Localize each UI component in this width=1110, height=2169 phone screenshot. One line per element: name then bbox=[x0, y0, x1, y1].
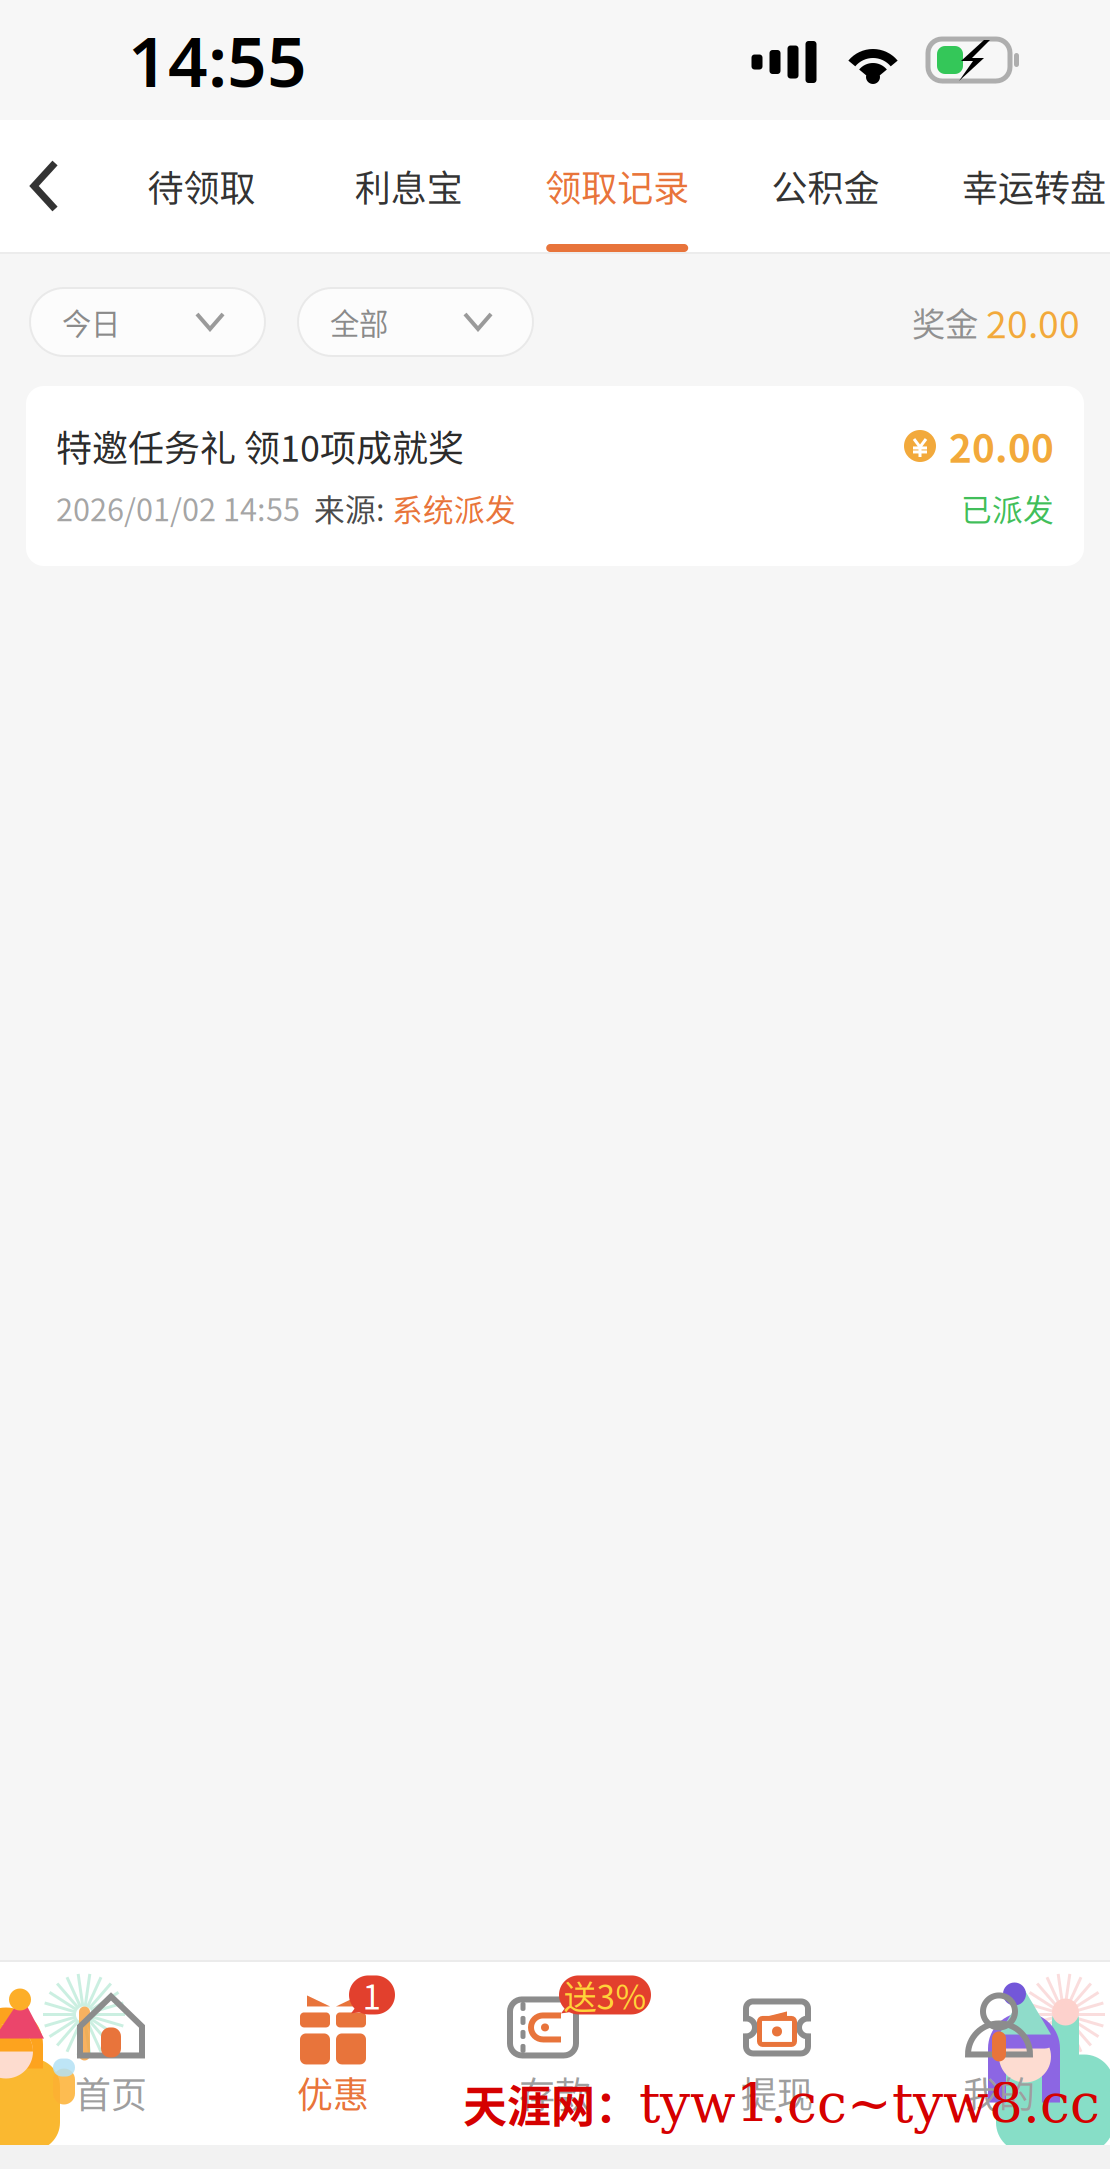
button[interactable]: 幸运转盘 bbox=[962, 120, 1106, 252]
staticText: 优惠 bbox=[297, 2066, 369, 2118]
staticText: 提现 bbox=[741, 2066, 813, 2118]
staticText: 全部 bbox=[330, 301, 388, 343]
staticText: 来源: bbox=[300, 486, 392, 530]
button[interactable]: 我的 bbox=[888, 1966, 1110, 2140]
staticText: 天涯网： bbox=[463, 2072, 639, 2135]
staticText: 幸运转盘 bbox=[962, 160, 1106, 212]
staticText: 领取记录 bbox=[545, 160, 689, 212]
button[interactable]: 送3% bbox=[444, 1966, 666, 2140]
staticText: 20.00 bbox=[978, 295, 1080, 349]
button[interactable]: 待领取 bbox=[130, 120, 272, 252]
button[interactable]: 利息宝 bbox=[338, 120, 480, 252]
staticText: 14:55 bbox=[128, 14, 307, 106]
button[interactable]: 今日 bbox=[30, 288, 265, 356]
button[interactable]: 公积金 bbox=[755, 120, 897, 252]
staticText: tyw1.cc~tyw8.cc bbox=[639, 2072, 1100, 2135]
staticText: 利息宝 bbox=[355, 160, 463, 212]
staticText: 2026/01/02 14:55 bbox=[56, 486, 300, 530]
staticText: 1 bbox=[362, 1971, 381, 2019]
button[interactable]: Back bbox=[0, 120, 65, 252]
staticText: 奖金 bbox=[912, 298, 978, 346]
button[interactable]: 首页 bbox=[0, 1966, 222, 2140]
staticText: 待领取 bbox=[147, 160, 255, 212]
staticText: 20.00 bbox=[949, 418, 1054, 474]
staticText: 系统派发 bbox=[392, 486, 516, 530]
staticText: 我的 bbox=[963, 2066, 1035, 2118]
button[interactable]: 领取记录 bbox=[545, 120, 689, 252]
staticText: 首页 bbox=[75, 2066, 147, 2118]
button[interactable]: 全部 bbox=[298, 288, 533, 356]
staticText: 今日 bbox=[62, 301, 120, 343]
staticText: 送3% bbox=[563, 1971, 646, 2019]
button[interactable]: 1 bbox=[222, 1966, 444, 2140]
staticText: 存款 bbox=[519, 2066, 591, 2118]
staticText: 公积金 bbox=[772, 160, 880, 212]
staticText: 特邀任务礼 领10项成就奖 bbox=[56, 420, 464, 472]
staticText: 已派发 bbox=[961, 486, 1054, 530]
button[interactable]: 提现 bbox=[666, 1966, 888, 2140]
